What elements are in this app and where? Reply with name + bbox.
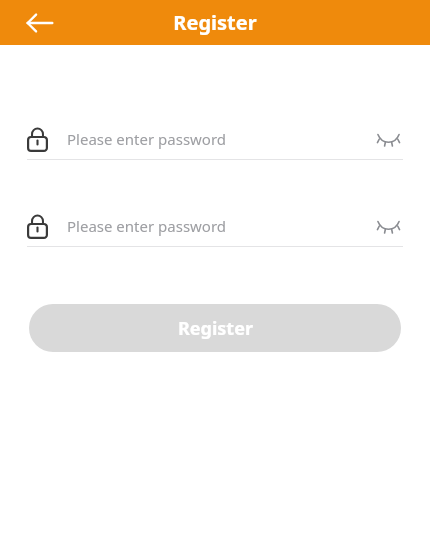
button[interactable]: Back — [18, 1, 62, 45]
staticText: Register — [178, 316, 253, 341]
staticText: Please enter password — [67, 216, 373, 236]
button[interactable]: Show password — [373, 124, 403, 154]
button[interactable]: Show password — [373, 211, 403, 241]
button[interactable]: Register — [29, 304, 401, 352]
button[interactable]: Please enter password — [27, 122, 403, 160]
button[interactable]: Please enter password — [27, 209, 403, 247]
staticText: Please enter password — [67, 129, 373, 149]
staticText: Register — [173, 9, 257, 36]
